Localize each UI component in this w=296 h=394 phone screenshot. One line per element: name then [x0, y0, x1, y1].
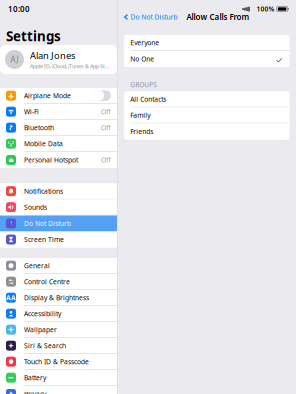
button[interactable]: AA [0, 290, 117, 306]
staticText: 100% [257, 5, 275, 13]
button[interactable]: Battery [0, 370, 117, 386]
button[interactable]: Screen Time [0, 231, 117, 247]
staticText: Airplane Mode [24, 91, 71, 100]
staticText: Control Centre [24, 277, 70, 286]
staticText: No One [130, 55, 154, 63]
staticText: Touch ID & Passcode [24, 357, 89, 366]
button[interactable]: Everyone [124, 35, 289, 51]
staticText: 10:00 [8, 4, 30, 14]
staticText: Accessibility [24, 309, 61, 318]
staticText: All Contacts [130, 95, 166, 104]
button[interactable]: Airplane Mode [0, 88, 117, 104]
staticText: Allow Calls From [186, 12, 249, 22]
staticText: Do Not Disturb [130, 13, 177, 21]
staticText: Family [130, 111, 150, 120]
button[interactable]: Control Centre [0, 274, 117, 290]
staticText: Personal Hotspot [24, 156, 78, 164]
staticText: Everyone [130, 38, 159, 47]
staticText: Display & Brightness [24, 293, 89, 302]
staticText: Friends [130, 127, 153, 136]
button[interactable]: Wallpaper [0, 322, 117, 338]
staticText: Apple ID, iCloud, iTunes & App St… [30, 63, 109, 70]
staticText: Screen Time [24, 235, 64, 244]
staticText: AA [6, 293, 16, 302]
staticText: GROUPS [130, 80, 157, 89]
staticText: General [24, 261, 50, 270]
button[interactable]: Touch ID & Passcode [0, 354, 117, 370]
staticText: Battery [24, 373, 46, 382]
staticText: Settings [6, 27, 61, 45]
button[interactable]: All Contacts [124, 91, 289, 107]
button[interactable]: No One [124, 51, 289, 67]
staticText: Wallpaper [24, 325, 57, 334]
button[interactable]: Accessibility [0, 306, 117, 322]
staticText: Off [101, 107, 111, 116]
staticText: Wi-Fi [24, 107, 39, 116]
button[interactable]: General [0, 258, 117, 274]
button[interactable]: Mobile Data [0, 136, 117, 152]
staticText: Sounds [24, 203, 47, 212]
button[interactable]: Siri & Search [0, 338, 117, 354]
button[interactable]: Do Not Disturb [118, 13, 177, 21]
button[interactable]: Bluetooth [0, 120, 117, 136]
staticText: Do Not Disturb [24, 219, 71, 228]
staticText: Siri & Search [24, 341, 66, 350]
staticText: Off [101, 156, 111, 164]
staticText: AJ [10, 54, 18, 65]
staticText: Off [101, 123, 111, 132]
button[interactable]: Family [124, 107, 289, 123]
button[interactable]: Wi-Fi [0, 104, 117, 120]
staticText: Alan Jones [30, 49, 75, 62]
button[interactable]: Friends [124, 123, 289, 139]
button[interactable]: AJ [0, 45, 117, 74]
staticText: Bluetooth [24, 123, 54, 132]
button[interactable]: Do Not Disturb [0, 215, 117, 231]
staticText: Mobile Data [24, 139, 63, 148]
staticText: Notifications [24, 187, 63, 196]
button[interactable]: Notifications [0, 183, 117, 199]
button[interactable]: Personal Hotspot [0, 152, 117, 168]
staticText: Privacy [24, 390, 46, 394]
button[interactable]: Privacy [0, 386, 117, 394]
button[interactable]: Sounds [0, 199, 117, 215]
